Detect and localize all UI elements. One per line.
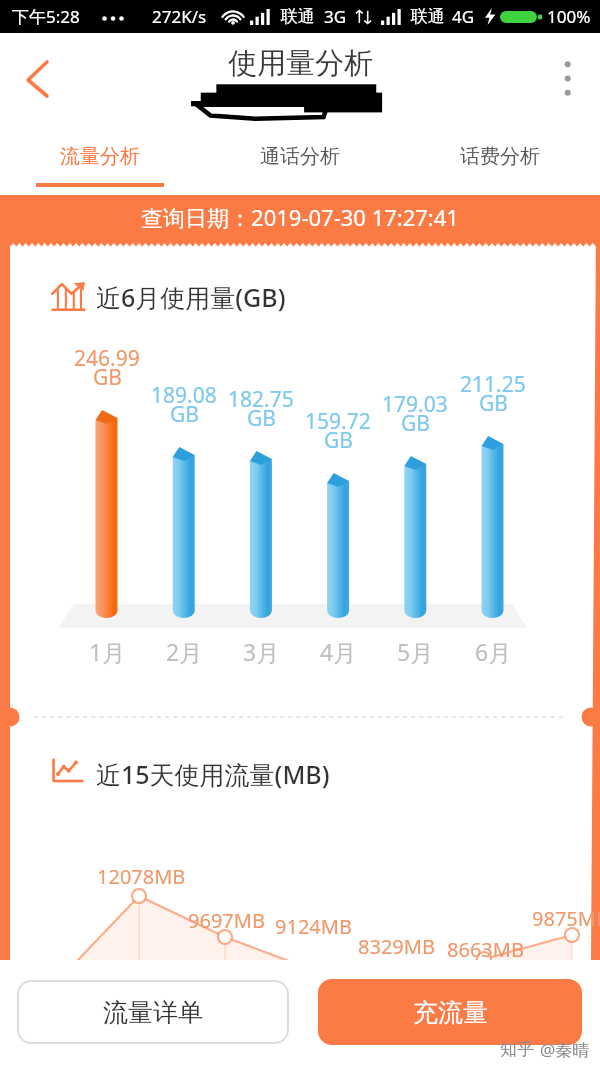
button[interactable]: 流量分析 (0, 128, 200, 195)
staticText: 182.75 (228, 385, 294, 414)
button[interactable]: 话费分析 (400, 128, 600, 195)
staticText: 179.03 (382, 390, 448, 419)
staticText: @秦晴 (540, 1038, 590, 1061)
staticText: 联通 (281, 6, 315, 27)
staticText: 流量分析 (60, 144, 140, 169)
button[interactable]: Back (8, 51, 68, 111)
staticText: 使用量分析 (228, 45, 373, 82)
staticText: GB (324, 426, 353, 455)
staticText: 查询日期：2019-07-30 17:27:41 (0, 202, 600, 232)
staticText: 3G (324, 5, 347, 28)
staticText: GB (401, 409, 430, 438)
staticText: 知乎 (500, 1039, 534, 1060)
staticText: 5月 (397, 636, 434, 667)
staticText: 9875MB (532, 905, 600, 932)
staticText: GB (479, 389, 508, 418)
staticText: 159.72 (305, 407, 371, 436)
staticText: 充流量 (413, 997, 488, 1028)
staticText: 272K/s (152, 5, 207, 28)
staticText: 8663MB (447, 936, 524, 963)
staticText: 9697MB (188, 907, 265, 934)
staticText: 100% (547, 5, 591, 28)
staticText: 下午5:28 (12, 5, 80, 28)
button[interactable]: 充流量 (318, 979, 582, 1045)
staticText: 211.25 (460, 370, 526, 399)
staticText: GB (170, 400, 199, 429)
staticText: 近6月使用量(GB) (96, 280, 286, 314)
staticText: GB (93, 363, 122, 392)
staticText: GB (247, 404, 276, 433)
staticText: 6月 (475, 636, 512, 667)
button[interactable]: 通话分析 (200, 128, 400, 195)
staticText: 2月 (166, 636, 203, 667)
staticText: 联通 (411, 6, 445, 27)
staticText: 4G (452, 5, 475, 28)
staticText: 3月 (243, 636, 280, 667)
staticText: 流量详单 (103, 997, 203, 1028)
staticText: 189.08 (151, 381, 217, 410)
staticText: 4月 (320, 636, 357, 667)
staticText: 12078MB (97, 863, 186, 890)
staticText: 近15天使用流量(MB) (96, 757, 330, 791)
staticText: 话费分析 (460, 144, 540, 169)
staticText: 246.99 (74, 344, 140, 373)
button[interactable]: More options (544, 51, 592, 99)
staticText: 1月 (89, 636, 126, 667)
staticText: 8329MB (358, 933, 435, 960)
staticText: 9124MB (275, 913, 352, 940)
staticText: 通话分析 (260, 144, 340, 169)
button[interactable]: 流量详单 (17, 980, 289, 1044)
